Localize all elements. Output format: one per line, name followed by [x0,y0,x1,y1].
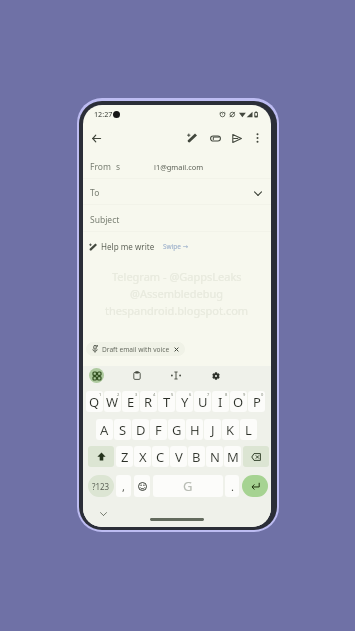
button[interactable]: R [140,391,157,412]
staticText: Y [181,393,189,411]
button[interactable]: More options [248,129,266,147]
button[interactable]: I [212,391,229,412]
button[interactable]: Space [153,475,223,497]
button[interactable]: M [224,446,241,467]
button[interactable]: A [96,419,113,440]
staticText: G [172,421,182,439]
button[interactable]: K [222,419,239,440]
button[interactable]: Draft email with voice [86,342,185,356]
staticText: O [233,393,244,411]
staticText: To [90,187,100,199]
button[interactable]: Help me write [183,129,201,147]
staticText: 8 [225,392,228,397]
staticText: I [218,393,223,411]
button[interactable]: Q [86,391,103,412]
staticText: Draft email with voice [102,345,170,354]
staticText: 3 [135,392,138,397]
button[interactable]: J [204,419,221,440]
button[interactable]: Emoji [134,475,150,497]
button[interactable]: Z [116,446,133,467]
staticText: S [119,421,127,439]
staticText: E [127,393,135,411]
button[interactable]: Backspace [243,446,269,467]
button[interactable]: G [168,419,185,440]
staticText: 6 [189,392,192,397]
staticText: 2 [117,392,120,397]
staticText: W [106,393,119,411]
button[interactable]: , [116,475,131,497]
button[interactable]: W [104,391,121,412]
staticText: s [116,161,121,173]
button[interactable]: ?123 [88,475,114,497]
staticText: @Assembledebug [130,286,224,301]
other: Backspace [251,453,261,461]
staticText: 7 [207,392,210,397]
staticText: Q [89,393,100,411]
staticText: , [122,479,125,494]
button[interactable]: D [132,419,149,440]
button[interactable]: Shift [88,446,114,467]
button[interactable]: To [83,181,271,204]
button[interactable]: E [122,391,139,412]
button[interactable]: V [170,446,187,467]
staticText: From [90,161,111,173]
staticText: T [163,393,171,411]
staticText: H [190,421,200,439]
staticText: L [245,421,252,439]
staticText: Z [121,448,129,466]
staticText: C [156,448,165,466]
staticText: X [139,448,147,466]
staticText: N [210,448,220,466]
button[interactable]: Y [176,391,193,412]
staticText: 4 [153,392,156,397]
staticText: 9 [243,392,246,397]
button[interactable]: L [240,419,257,440]
button[interactable]: T [158,391,175,412]
button[interactable]: Attach file [206,129,224,147]
staticText: A [100,421,109,439]
button[interactable]: Text editing [168,368,183,383]
button[interactable]: N [206,446,223,467]
staticText: 5 [171,392,174,397]
button[interactable]: Settings [208,368,223,383]
button[interactable]: Subject [83,208,271,231]
other: Shift [97,452,106,461]
staticText: thespandroid.blogspot.com [105,303,249,318]
staticText: V [175,448,183,466]
button[interactable]: H [186,419,203,440]
button[interactable]: S [114,419,131,440]
button[interactable]: Clipboard [129,368,144,383]
staticText: B [192,448,201,466]
staticText: G [183,477,193,495]
button[interactable]: X [134,446,151,467]
button[interactable]: Back [87,129,105,147]
button[interactable]: B [188,446,205,467]
button[interactable]: O [230,391,247,412]
button[interactable]: Hide keyboard [96,507,110,521]
button[interactable]: . [225,475,239,497]
staticText: J [211,421,215,439]
staticText: 0 [261,392,264,397]
staticText: U [198,393,208,411]
staticText: M [227,448,239,466]
button[interactable]: Enter [242,475,268,497]
staticText: . [231,479,234,494]
staticText: Telegram - @GappsLeaks [112,269,242,284]
button[interactable]: P [248,391,265,412]
button[interactable]: F [150,419,167,440]
button[interactable]: C [152,446,169,467]
staticText: R [144,393,153,411]
button[interactable]: Help me write [83,236,271,257]
staticText: ?123 [92,481,110,492]
staticText: Subject [90,214,120,226]
button[interactable]: Send [228,129,246,147]
staticText: l1@gmail.com [154,162,204,172]
staticText: D [136,421,146,439]
staticText: 12:27 [94,109,113,119]
button[interactable]: U [194,391,211,412]
staticText: K [226,421,235,439]
staticText: Swipe → [163,242,189,251]
staticText: P [253,393,261,411]
button[interactable]: Keyboard modes [89,368,104,383]
button[interactable]: From [83,155,271,178]
